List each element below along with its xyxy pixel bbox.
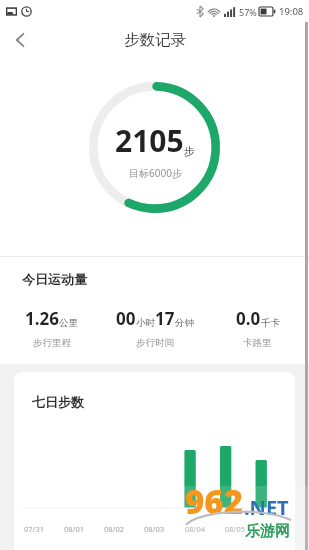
button[interactable]: Back xyxy=(0,22,40,58)
staticText: 今日运动量 xyxy=(22,271,87,287)
staticText: 08/02 xyxy=(104,524,124,534)
button[interactable]: 00 xyxy=(103,307,206,349)
button[interactable]: 七日步数 xyxy=(14,372,295,550)
staticText: 17 xyxy=(155,307,175,330)
staticText: 57% xyxy=(239,6,257,18)
staticText: 08/03 xyxy=(144,524,164,534)
staticText: 08/06 xyxy=(265,524,285,534)
staticText: 乐游网 xyxy=(245,522,290,541)
staticText: 分钟 xyxy=(175,317,194,329)
staticText: 公里 xyxy=(59,317,78,329)
staticText: 07/31 xyxy=(24,524,44,534)
button[interactable]: 0.0 xyxy=(206,307,309,349)
staticText: 2105 xyxy=(115,120,184,161)
staticText: 1.26 xyxy=(25,307,59,330)
staticText: 步行时间 xyxy=(136,337,174,349)
staticText: 步数记录 xyxy=(124,30,186,50)
staticText: 七日步数 xyxy=(32,394,84,410)
button[interactable]: 1.26 xyxy=(0,307,103,349)
staticText: .NET xyxy=(244,494,289,521)
staticText: 步行里程 xyxy=(33,337,71,349)
staticText: 0.0 xyxy=(236,307,261,330)
staticText: 卡路里 xyxy=(243,337,272,349)
staticText: 千卡 xyxy=(261,317,280,329)
staticText: 步 xyxy=(184,144,195,158)
staticText: 00 xyxy=(116,307,136,330)
staticText: 08/04 xyxy=(185,524,205,534)
staticText: 08/05 xyxy=(225,524,245,534)
staticText: 962 xyxy=(185,479,244,524)
staticText: 小时 xyxy=(136,317,155,329)
staticText: 目标6000步 xyxy=(129,166,182,180)
staticText: 19:08 xyxy=(279,5,304,18)
staticText: 08/01 xyxy=(64,524,84,534)
